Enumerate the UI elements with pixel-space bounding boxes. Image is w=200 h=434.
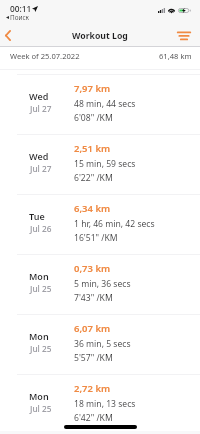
staticText: Wed — [29, 90, 49, 102]
button[interactable]: Mon — [0, 254, 200, 314]
staticText: 6'22" /KM — [74, 172, 113, 184]
staticText: Wed — [29, 150, 49, 162]
staticText: 6,07 km — [74, 322, 111, 335]
staticText: 48 min, 44 secs — [74, 98, 136, 110]
button[interactable]: Tue — [0, 194, 200, 254]
staticText: 6'42" /KM — [74, 412, 113, 424]
staticText: 5 min, 36 secs — [74, 278, 131, 290]
staticText: Jul 27 — [30, 103, 52, 114]
staticText: 5'57" /KM — [74, 352, 113, 364]
staticText: Mon — [29, 330, 49, 342]
staticText: 2,72 km — [74, 382, 111, 395]
button[interactable]: Mon — [0, 314, 200, 374]
staticText: 16'51" /KM — [74, 232, 118, 244]
staticText: Поиск — [10, 13, 29, 22]
staticText: Tue — [29, 210, 45, 222]
button[interactable]: Wed — [0, 74, 200, 134]
staticText: 18 min, 13 secs — [74, 398, 136, 410]
staticText: 00:11 — [10, 3, 32, 14]
staticText: Mon — [29, 390, 49, 402]
staticText: 6'08" /KM — [74, 112, 113, 124]
button[interactable]: Mon — [0, 374, 200, 434]
staticText: 7'43" /KM — [74, 292, 113, 304]
staticText: Jul 25 — [30, 343, 52, 354]
staticText: 2,51 km — [74, 142, 111, 155]
button[interactable]: Back — [0, 23, 20, 45]
button[interactable]: Wed — [0, 134, 200, 194]
staticText: Workout Log — [72, 30, 128, 42]
staticText: 1 hr, 46 min, 42 secs — [74, 218, 155, 230]
staticText: 6,34 km — [74, 202, 111, 215]
staticText: Jul 25 — [30, 283, 52, 294]
staticText: Jul 25 — [30, 403, 52, 414]
staticText: Week of 25.07.2022 — [10, 51, 80, 61]
staticText: 7,97 km — [74, 82, 111, 95]
staticText: 0,73 km — [74, 262, 111, 275]
staticText: 36 min, 5 secs — [74, 338, 131, 350]
staticText: Jul 27 — [30, 163, 52, 174]
staticText: 61,48 km — [159, 51, 192, 61]
staticText: Mon — [29, 270, 49, 282]
staticText: 15 min, 59 secs — [74, 158, 136, 170]
staticText: Jul 26 — [30, 223, 52, 234]
button[interactable]: Filter — [172, 23, 195, 45]
